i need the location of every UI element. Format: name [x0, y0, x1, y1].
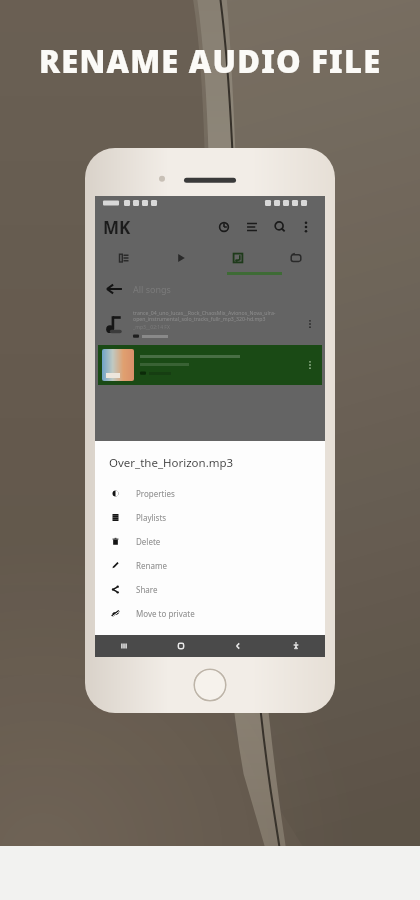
button[interactable]: Now playing — [152, 244, 209, 272]
button[interactable]: Back — [103, 278, 125, 300]
button[interactable]: trance_04_uno_lucas__Rock_ChaosMix_Avion… — [95, 303, 325, 345]
staticText: MK — [103, 216, 131, 239]
button[interactable]: Songs — [209, 244, 267, 272]
staticText: Rename — [136, 560, 167, 571]
button[interactable]: Sleep timer — [213, 216, 235, 238]
button[interactable]: Item menu — [302, 316, 318, 332]
button[interactable]: More options — [295, 216, 317, 238]
button[interactable]: Delete — [95, 529, 325, 553]
button[interactable]: Folders — [267, 244, 325, 272]
staticText: Properties — [136, 488, 175, 499]
button[interactable]: Rename — [95, 553, 325, 577]
button[interactable]: Share — [95, 577, 325, 601]
button[interactable]: Queue — [95, 244, 152, 272]
staticText: All songs — [133, 283, 171, 295]
staticText: _mp3__02:14 FX — [133, 324, 170, 331]
staticText: Playlists — [136, 512, 167, 523]
button[interactable]: Item menu — [302, 357, 318, 373]
staticText: RENAME AUDIO FILE — [39, 40, 382, 82]
button[interactable]: Move to private — [95, 601, 325, 625]
button[interactable]: Sort — [241, 216, 263, 238]
button[interactable]: Item menu — [98, 345, 322, 385]
button[interactable]: Recents — [95, 635, 152, 657]
staticText: Move to private — [136, 608, 195, 619]
button[interactable]: Properties — [95, 481, 325, 505]
staticText: Share — [136, 584, 158, 595]
button[interactable]: Back — [209, 635, 267, 657]
button[interactable]: Home — [152, 635, 209, 657]
button[interactable]: Playlists — [95, 505, 325, 529]
staticText: Over_the_Horizon.mp3 — [109, 455, 234, 471]
staticText: trance_04_uno_lucas__Rock_ChaosMix_Avion… — [133, 309, 302, 323]
button[interactable]: Search — [269, 216, 291, 238]
button[interactable]: Accessibility — [267, 635, 325, 657]
staticText: Delete — [136, 536, 161, 547]
